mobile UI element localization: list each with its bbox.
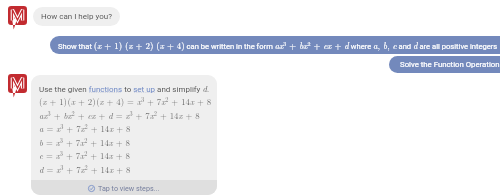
staticText: c = x3 + 7x2 + 14x + 8 <box>39 149 130 162</box>
button[interactable]: How can I help you? <box>33 7 120 26</box>
other: Mathway assistant <box>8 6 27 31</box>
staticText: d = x3 + 7x2 + 14x + 8 <box>39 163 131 176</box>
button[interactable]: Show that (x + 1) (x + 2) (x + 4) can be… <box>50 36 500 54</box>
other: Steps available <box>88 185 95 192</box>
other: Mathway assistant <box>8 74 27 99</box>
staticText: (x + 1) (x + 2) (x + 4) = x3 + 7x2 + 14x… <box>39 95 212 108</box>
staticText: Solve the Function Operation <box>400 60 500 69</box>
staticText: b = x3 + 7x2 + 14x + 8 <box>39 136 130 149</box>
button[interactable]: Solve the Function Operation <box>389 56 500 73</box>
button[interactable] <box>31 75 217 195</box>
staticText: a = x3 + 7x2 + 14x + 8 <box>39 122 131 135</box>
staticText: Use the given functions to set up and si… <box>39 82 209 94</box>
staticText: How can I help you? <box>41 12 112 21</box>
staticText: Tap to view steps... <box>98 184 160 192</box>
staticText: ax3 + bx2 + cx + d = x3 + 7x2 + 14x + 8 <box>39 109 200 122</box>
staticText: Show that (x + 1) (x + 2) (x + 4) can be… <box>58 39 498 52</box>
button[interactable]: Steps available <box>31 180 217 195</box>
